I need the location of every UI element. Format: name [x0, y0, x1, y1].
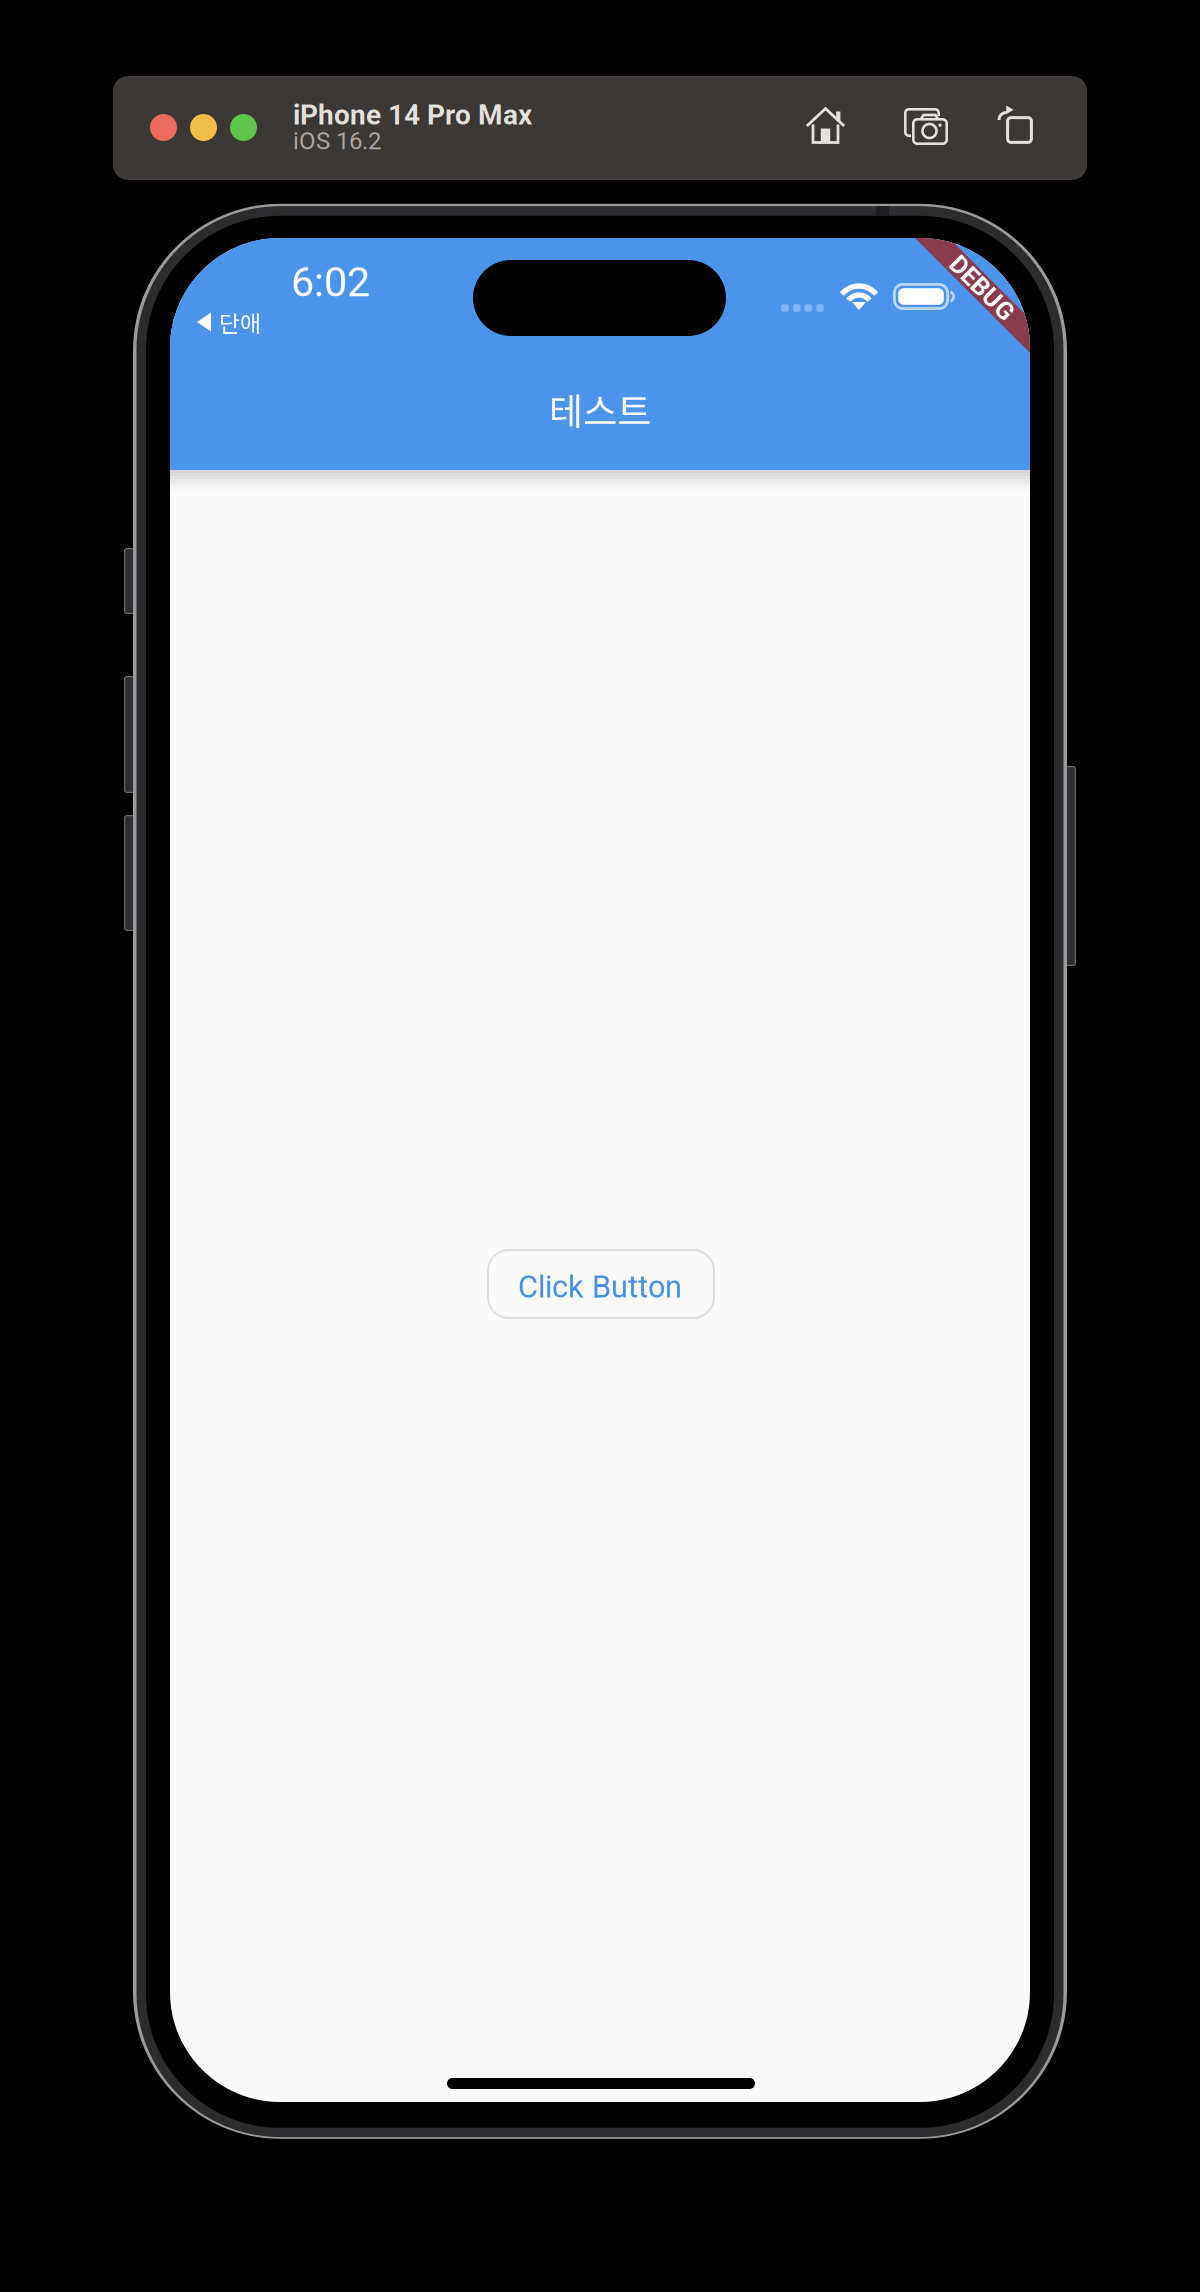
button[interactable]: 단애 [197, 305, 317, 339]
staticText: 6:02 [291, 258, 370, 306]
staticText: DEBUG [942, 273, 1022, 303]
button[interactable]: Home [806, 107, 846, 145]
button[interactable]: Rotate [998, 105, 1032, 143]
button[interactable]: Screenshot [904, 108, 948, 144]
staticText: Click Button [518, 1269, 682, 1305]
button[interactable]: Click Button [487, 1249, 715, 1319]
staticText: 단애 [219, 306, 261, 338]
staticText: iOS 16.2 [293, 127, 381, 155]
staticText: 테스트 [549, 382, 651, 436]
staticText: iPhone 14 Pro Max [293, 99, 532, 131]
